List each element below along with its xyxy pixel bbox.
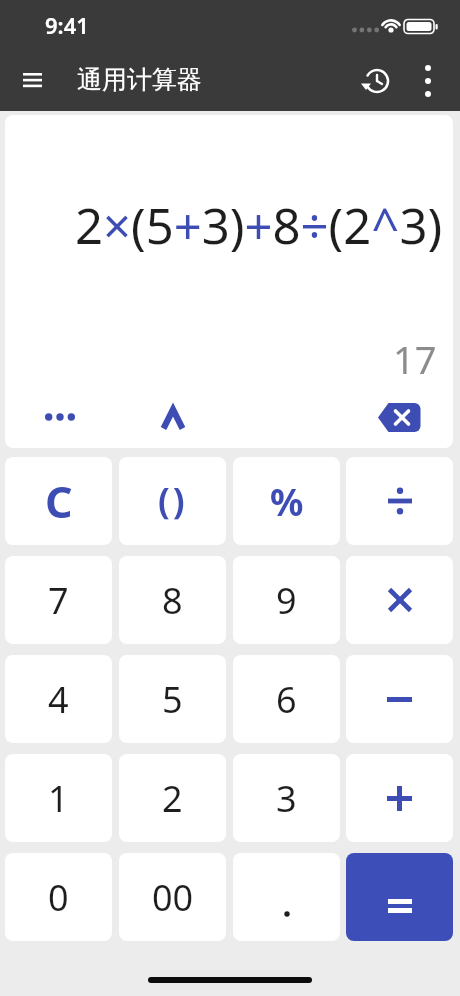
staticText: 9:41 (45, 10, 89, 40)
staticText: 7 (48, 576, 69, 625)
staticText: 3 (276, 774, 297, 823)
staticText: () (158, 477, 188, 525)
staticText: 9 (276, 576, 297, 625)
button[interactable]: 5 (119, 655, 226, 743)
staticText: 5 (162, 675, 183, 724)
staticText: 0 (48, 873, 69, 922)
button[interactable]: 1 (5, 754, 112, 842)
button[interactable]: () (119, 457, 226, 545)
button[interactable]: 0 (5, 853, 112, 941)
staticText: 2×(5+3)+8÷(2^3) (75, 192, 443, 259)
button[interactable]: 4 (5, 655, 112, 743)
button[interactable] (141, 394, 205, 440)
staticText: 6 (276, 675, 297, 724)
button[interactable] (346, 754, 453, 842)
button[interactable] (28, 394, 92, 440)
button[interactable] (356, 61, 396, 101)
staticText: 1 (48, 774, 69, 823)
button[interactable]: 8 (119, 556, 226, 644)
button[interactable] (368, 394, 432, 440)
button[interactable]: 9 (233, 556, 340, 644)
button[interactable] (346, 655, 453, 743)
staticText: % (270, 476, 304, 526)
button[interactable]: 00 (119, 853, 226, 941)
button[interactable] (408, 61, 448, 101)
button[interactable]: C (5, 457, 112, 545)
button[interactable] (346, 853, 453, 941)
staticText: 17 (393, 333, 437, 385)
staticText: 2 (162, 774, 183, 823)
button[interactable]: 2 (119, 754, 226, 842)
button[interactable] (346, 457, 453, 545)
staticText: C (45, 472, 73, 531)
button[interactable] (346, 556, 453, 644)
staticText: 4 (48, 675, 69, 724)
button[interactable]: 6 (233, 655, 340, 743)
button[interactable]: 3 (233, 754, 340, 842)
button[interactable] (12, 60, 52, 100)
button[interactable]: % (233, 457, 340, 545)
button[interactable]: 7 (5, 556, 112, 644)
button[interactable] (233, 853, 340, 941)
staticText: 通用计算器 (77, 64, 202, 95)
staticText: 00 (152, 873, 194, 922)
staticText: 8 (162, 576, 183, 625)
